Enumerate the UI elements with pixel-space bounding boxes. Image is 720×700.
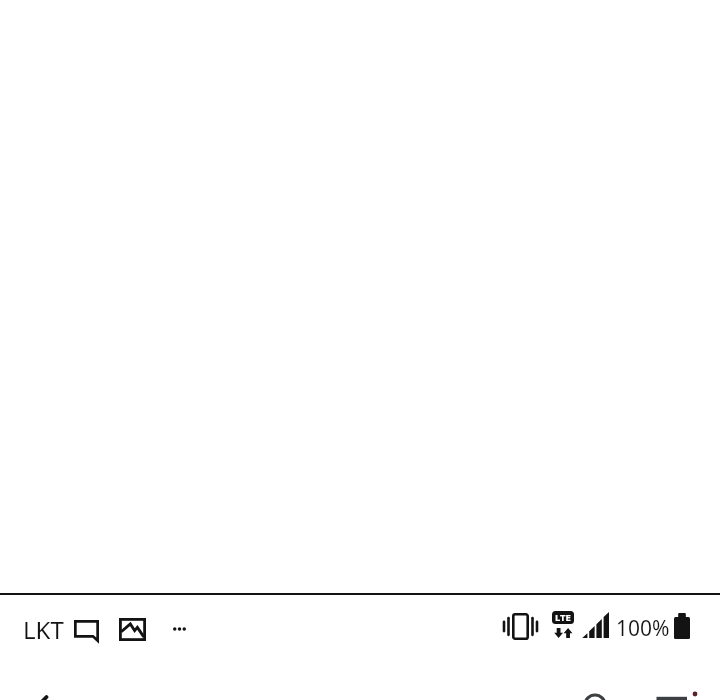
staticText: LKT <box>23 613 64 646</box>
button[interactable]: LKT notification <box>23 613 64 646</box>
staticText: LTE <box>555 611 571 624</box>
button[interactable]: Menu <box>652 684 700 700</box>
button[interactable]: Back <box>26 672 70 700</box>
staticText: 100% <box>616 614 670 643</box>
button[interactable]: Search <box>573 683 617 700</box>
button[interactable]: Messages <box>74 620 99 642</box>
button[interactable]: Screenshot <box>119 618 146 641</box>
